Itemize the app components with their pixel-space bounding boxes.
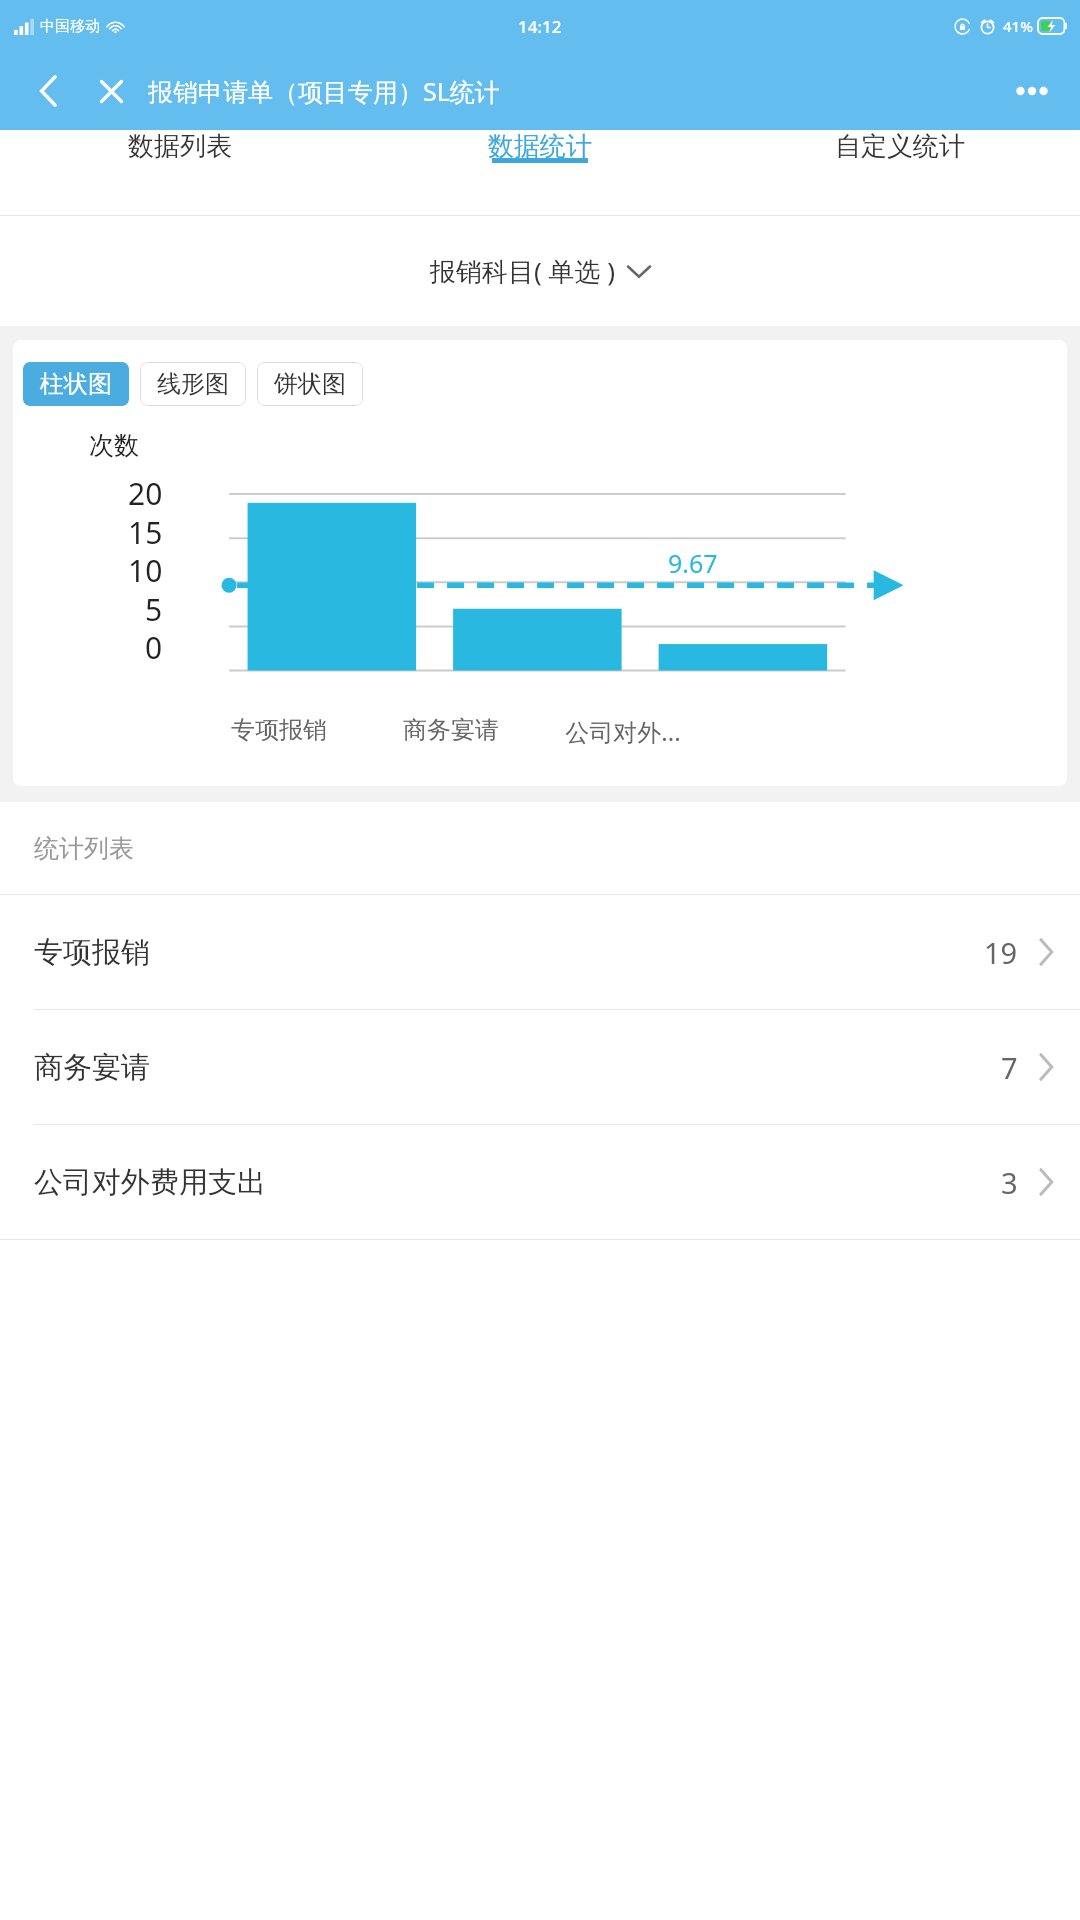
- staticText: 14:12: [518, 15, 562, 38]
- staticText: 次数: [89, 430, 139, 461]
- staticText: 41%: [1003, 16, 1033, 36]
- staticText: 专项报销: [231, 715, 327, 745]
- button[interactable]: 自定义统计: [720, 130, 1080, 163]
- staticText: 报销申请单（项目专用）SL统计: [148, 74, 500, 108]
- staticText: 7: [1001, 1048, 1018, 1087]
- button[interactable]: 柱状图: [23, 362, 129, 406]
- staticText: 商务宴请: [34, 1049, 150, 1086]
- staticText: 3: [1001, 1163, 1018, 1202]
- staticText: 专项报销: [34, 934, 150, 971]
- button[interactable]: 数据统计: [360, 130, 720, 163]
- button[interactable]: More options: [1006, 65, 1058, 117]
- staticText: 自定义统计: [835, 130, 965, 163]
- staticText: 饼状图: [274, 369, 346, 399]
- staticText: 19: [984, 933, 1018, 972]
- staticText: 15: [128, 512, 163, 553]
- staticText: 10: [128, 550, 163, 591]
- staticText: 公司对外...: [565, 715, 681, 748]
- staticText: 线形图: [157, 369, 229, 399]
- staticText: 0: [145, 627, 163, 668]
- staticText: 公司对外费用支出: [34, 1164, 266, 1201]
- staticText: 9.67: [668, 546, 718, 580]
- button[interactable]: Back: [26, 68, 72, 114]
- button[interactable]: 商务宴请: [0, 1010, 1080, 1124]
- button[interactable]: 数据列表: [0, 130, 360, 163]
- staticText: 中国移动: [40, 17, 100, 36]
- button[interactable]: 专项报销: [0, 895, 1080, 1009]
- button[interactable]: 公司对外费用支出: [0, 1125, 1080, 1239]
- staticText: 统计列表: [34, 833, 134, 864]
- staticText: 柱状图: [40, 369, 112, 399]
- button[interactable]: 线形图: [140, 362, 246, 406]
- staticText: 数据统计: [488, 130, 592, 163]
- staticText: 数据列表: [128, 130, 232, 163]
- staticText: 5: [145, 589, 163, 630]
- staticText: 20: [128, 473, 163, 514]
- staticText: 商务宴请: [403, 715, 499, 745]
- staticText: 报销科目( 单选 ): [430, 253, 616, 289]
- button[interactable]: 报销科目( 单选 ): [430, 253, 650, 289]
- button[interactable]: Close: [88, 68, 134, 114]
- button[interactable]: 饼状图: [257, 362, 363, 406]
